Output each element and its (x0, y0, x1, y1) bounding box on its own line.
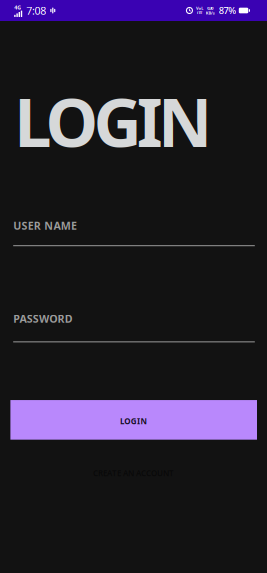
staticText: 0.30 (207, 5, 213, 11)
staticText: USER NAME (13, 218, 77, 233)
staticText: PASSWORD (13, 311, 73, 326)
staticText: 4G (14, 4, 21, 11)
button[interactable]: LOGIN (10, 400, 257, 440)
staticText: LOGIN (120, 416, 147, 426)
staticText: LOGIN (14, 77, 212, 165)
staticText: VoL (196, 5, 203, 11)
staticText: LTE (197, 10, 202, 15)
staticText: 7:08 (26, 3, 46, 18)
staticText: KB/s (206, 10, 215, 15)
staticText: 87% (219, 4, 236, 17)
